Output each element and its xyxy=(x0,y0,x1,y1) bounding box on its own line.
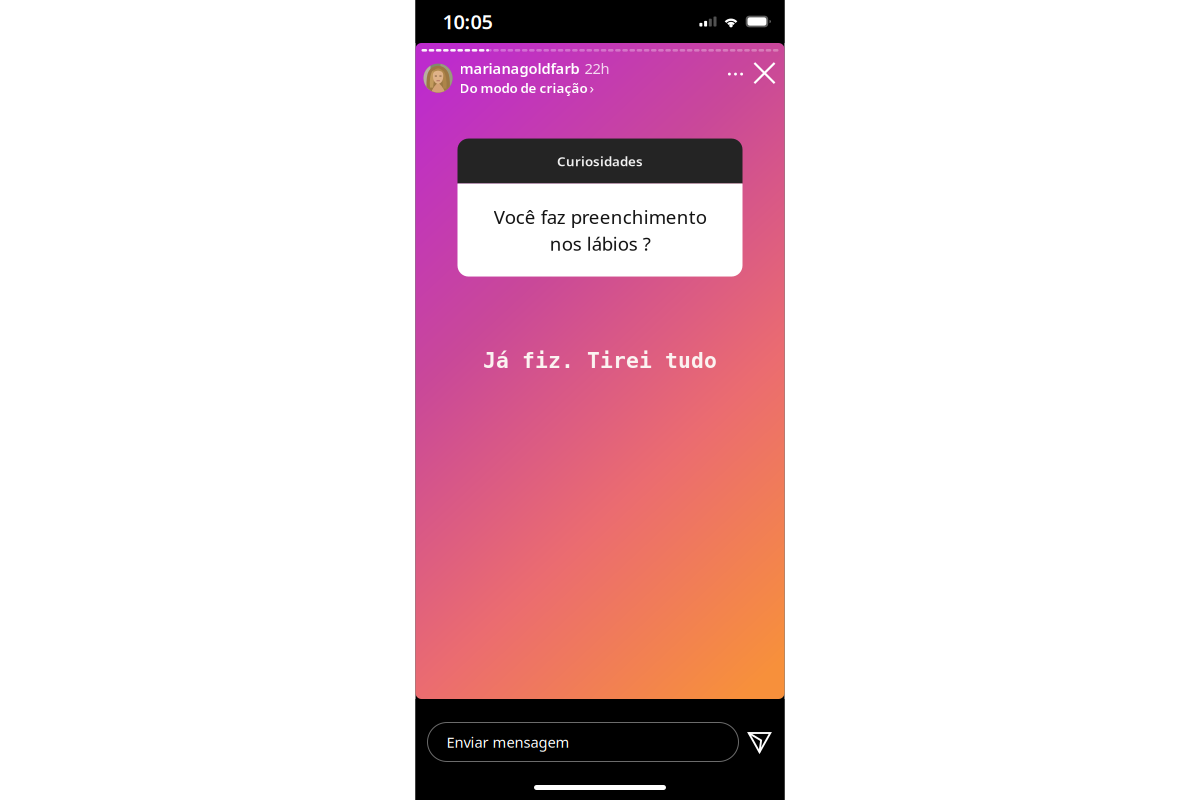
button[interactable]: Close story xyxy=(749,58,779,88)
staticText: marianagoldfarb xyxy=(459,59,579,78)
button[interactable]: Send message xyxy=(744,722,774,762)
button[interactable]: marianagoldfarb xyxy=(423,59,609,98)
staticText: Enviar mensagem xyxy=(446,732,569,752)
staticText: Você faz preenchimento nos lábios ? xyxy=(493,204,706,256)
button[interactable]: Enviar mensagem xyxy=(427,722,738,761)
button[interactable]: More options xyxy=(721,59,749,89)
staticText: Curiosidades xyxy=(557,152,643,170)
staticText: Do modo de criação xyxy=(459,79,587,97)
staticText: 10:05 xyxy=(442,8,492,35)
staticText: 22h xyxy=(584,59,609,78)
staticText: › xyxy=(589,78,594,98)
staticText: Já fiz. Tirei tudo xyxy=(483,349,717,373)
